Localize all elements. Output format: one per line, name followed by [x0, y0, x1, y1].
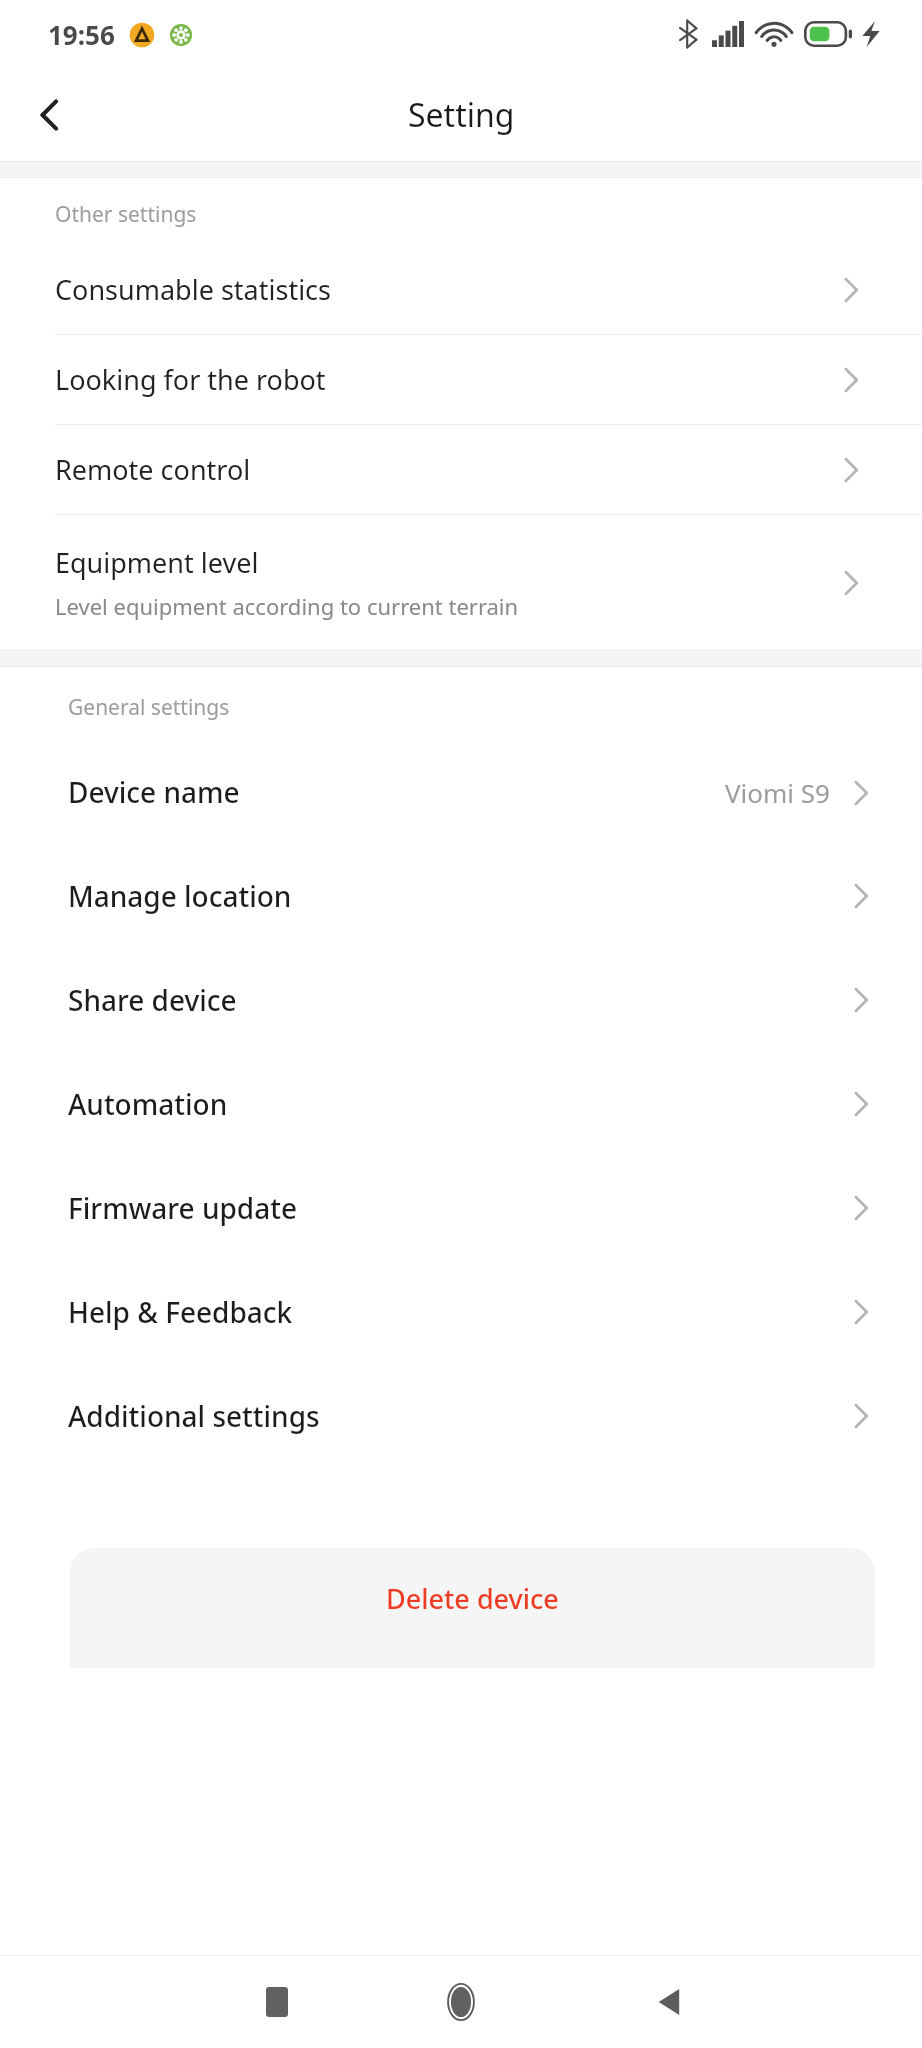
button[interactable]: Remote control — [0, 425, 922, 515]
staticText: Equipment level — [55, 544, 259, 581]
button[interactable]: Back — [646, 1977, 696, 2027]
staticText: General settings — [68, 693, 230, 722]
staticText: Manage location — [68, 877, 292, 915]
staticText: Delete device — [386, 1580, 559, 1617]
button[interactable]: Consumable statistics — [0, 245, 922, 335]
staticText: Setting — [408, 93, 515, 137]
staticText: Level equipment according to current ter… — [55, 591, 519, 621]
button[interactable]: Recents — [252, 1977, 302, 2027]
button[interactable]: Equipment level — [0, 515, 922, 650]
staticText: Firmware update — [68, 1189, 298, 1227]
staticText: Device name — [68, 773, 240, 811]
staticText: Share device — [68, 981, 237, 1019]
staticText: 19:56 — [48, 17, 115, 52]
staticText: Other settings — [55, 200, 197, 229]
button[interactable]: Share device — [0, 948, 922, 1052]
button[interactable]: Additional settings — [0, 1364, 922, 1468]
button[interactable]: Back — [18, 83, 82, 147]
staticText: Remote control — [55, 451, 251, 488]
button[interactable]: Device name — [0, 740, 922, 844]
staticText: Viomi S9 — [725, 775, 830, 810]
button[interactable]: Home — [434, 1975, 488, 2029]
button[interactable]: Looking for the robot — [0, 335, 922, 425]
staticText: Automation — [68, 1085, 228, 1123]
staticText: Consumable statistics — [55, 271, 331, 308]
button[interactable]: Help & Feedback — [0, 1260, 922, 1364]
button[interactable]: Delete device — [70, 1548, 875, 1668]
staticText: Additional settings — [68, 1397, 320, 1435]
button[interactable]: Automation — [0, 1052, 922, 1156]
button[interactable]: Firmware update — [0, 1156, 922, 1260]
staticText: Help & Feedback — [68, 1293, 293, 1331]
staticText: Looking for the robot — [55, 361, 326, 398]
button[interactable]: Manage location — [0, 844, 922, 948]
